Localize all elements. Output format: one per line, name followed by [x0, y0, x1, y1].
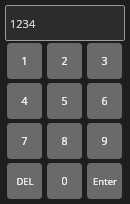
staticText: 6: [101, 94, 108, 108]
staticText: DEL: [16, 175, 34, 188]
button[interactable]: 1234: [5, 5, 125, 41]
button[interactable]: 4: [7, 83, 42, 119]
button[interactable]: 7: [7, 123, 42, 159]
staticText: 2: [61, 54, 68, 68]
staticText: 9: [101, 134, 108, 148]
staticText: Enter: [93, 175, 117, 188]
button[interactable]: Enter: [87, 163, 122, 199]
staticText: 4: [21, 94, 28, 108]
button[interactable]: 5: [47, 83, 82, 119]
button[interactable]: 9: [87, 123, 122, 159]
button[interactable]: 1: [7, 43, 42, 79]
staticText: 5: [61, 94, 68, 108]
button[interactable]: 0: [47, 163, 82, 199]
button[interactable]: 3: [87, 43, 122, 79]
staticText: 1: [21, 54, 28, 68]
staticText: 1234: [10, 16, 36, 31]
button[interactable]: 6: [87, 83, 122, 119]
staticText: 7: [21, 134, 28, 148]
staticText: 0: [61, 174, 68, 188]
staticText: 8: [61, 134, 68, 148]
button[interactable]: DEL: [7, 163, 42, 199]
staticText: 3: [101, 54, 108, 68]
button[interactable]: 2: [47, 43, 82, 79]
button[interactable]: 8: [47, 123, 82, 159]
